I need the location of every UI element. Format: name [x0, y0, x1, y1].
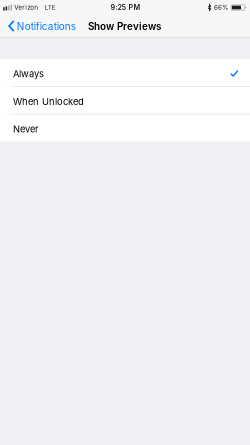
staticText: Never	[13, 124, 39, 135]
staticText: Notifications	[17, 20, 76, 32]
button[interactable]: Never	[0, 114, 250, 142]
staticText: 9:25 PM	[110, 3, 140, 12]
button[interactable]: When Unlocked	[0, 87, 250, 114]
button[interactable]: Notifications	[0, 15, 81, 37]
staticText: When Unlocked	[13, 96, 84, 107]
staticText: LTE	[45, 4, 56, 11]
staticText: Always	[13, 68, 44, 79]
button[interactable]: Always	[0, 59, 250, 86]
staticText: Show	[88, 20, 114, 32]
staticText: Previews	[117, 20, 161, 32]
staticText: 66%	[214, 4, 228, 11]
staticText: Verizon	[14, 4, 38, 11]
